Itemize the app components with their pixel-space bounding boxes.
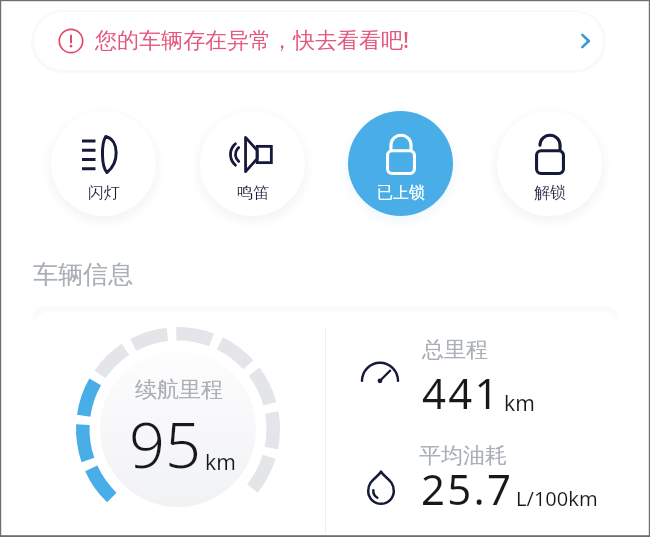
staticText: 闪灯 bbox=[88, 183, 120, 203]
staticText: 您的车辆存在异常，快去看看吧! bbox=[95, 24, 410, 54]
staticText: 已上锁 bbox=[377, 183, 425, 203]
staticText: 鸣笛 bbox=[237, 183, 269, 203]
staticText: 95 bbox=[129, 401, 201, 487]
button[interactable]: 鸣笛 bbox=[200, 111, 305, 216]
staticText: 车辆信息 bbox=[33, 259, 133, 290]
staticText: 续航里程 bbox=[135, 376, 223, 404]
staticText: 总里程 bbox=[422, 336, 488, 364]
staticText: 25.7 bbox=[421, 460, 514, 517]
staticText: 解锁 bbox=[534, 183, 566, 203]
staticText: 平均油耗 bbox=[419, 442, 507, 470]
button[interactable]: 闪灯 bbox=[51, 111, 156, 216]
staticText: L/100km bbox=[516, 485, 598, 512]
staticText: km bbox=[205, 448, 236, 477]
button[interactable]: 您的车辆存在异常，快去看看吧! bbox=[34, 12, 603, 70]
button[interactable]: 查看异常详情 bbox=[567, 23, 603, 59]
button[interactable]: 已上锁 bbox=[348, 111, 453, 216]
button[interactable]: 解锁 bbox=[497, 111, 602, 216]
staticText: 441 bbox=[422, 364, 501, 421]
staticText: km bbox=[504, 389, 535, 418]
